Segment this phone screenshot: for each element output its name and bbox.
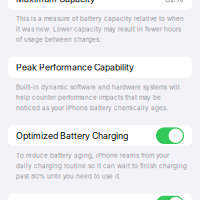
staticText: To reduce battery aging, iPhone learns f… — [16, 152, 187, 180]
button[interactable]: Peak Performance Capability — [0, 57, 200, 78]
staticText: Optimized Battery Charging — [16, 130, 128, 141]
staticText: This is a measure of battery capacity re… — [16, 15, 184, 43]
button[interactable]: Clean Energy Charging — [0, 193, 200, 200]
button[interactable]: Maximum Capacity — [0, 0, 200, 9]
staticText: Maximum Capacity — [16, 0, 95, 4]
button[interactable]: Optimized Battery Charging — [0, 125, 200, 146]
staticText: Peak Performance Capability — [16, 62, 134, 73]
staticText: Built-in dynamic software and hardware s… — [16, 83, 180, 112]
staticText: 82% — [165, 0, 184, 4]
